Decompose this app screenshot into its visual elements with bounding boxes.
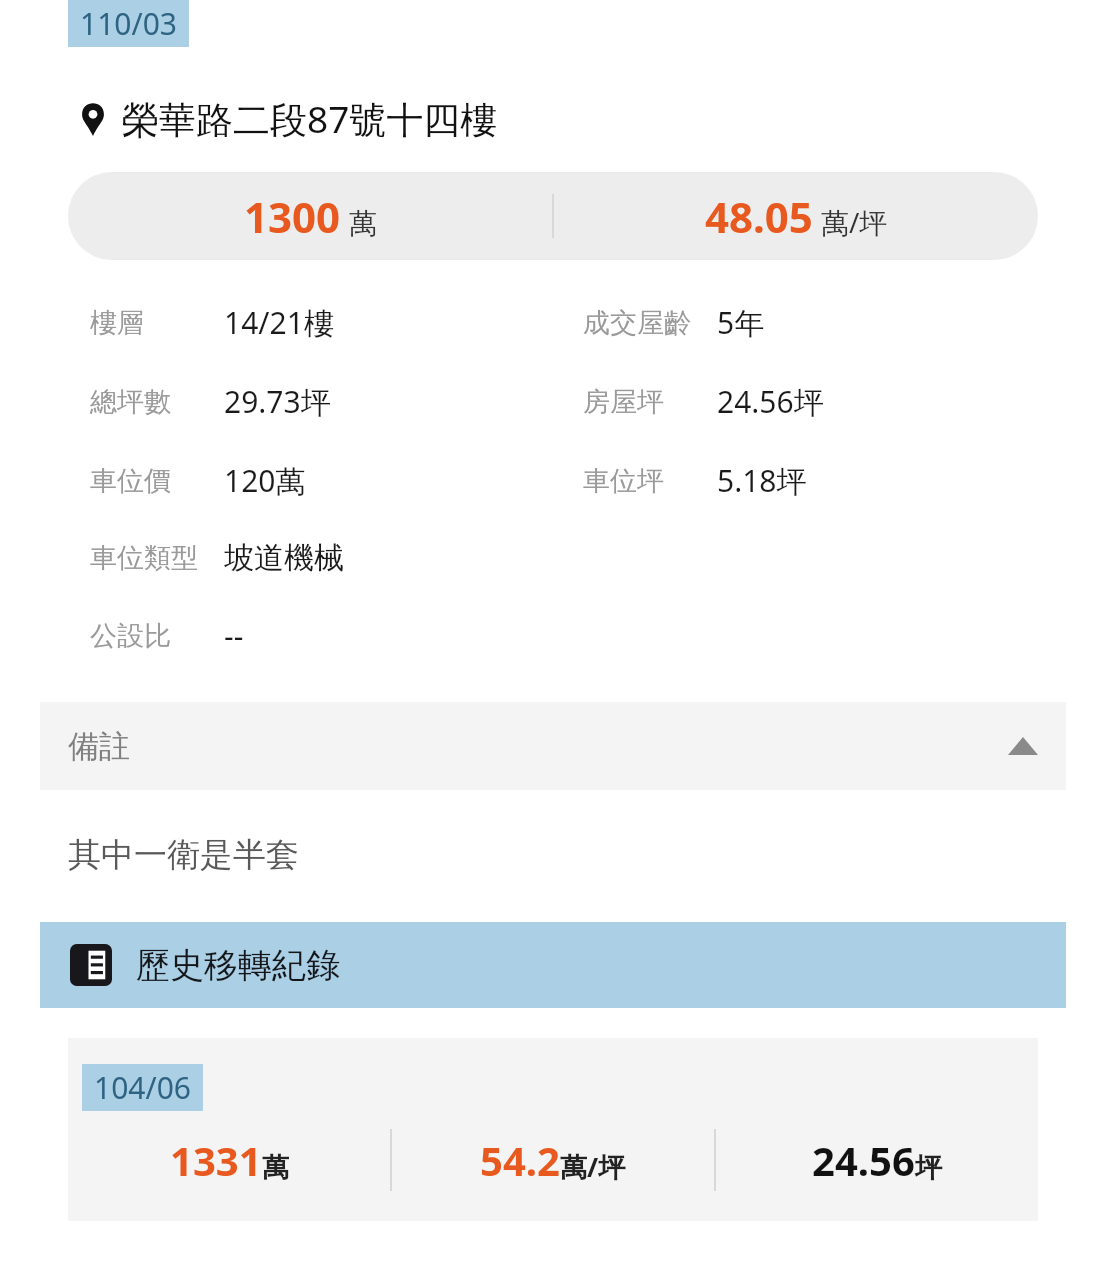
staticText: 樓層	[90, 306, 208, 340]
staticText: 坪	[915, 1151, 942, 1185]
other: Collapse remarks	[1008, 737, 1038, 755]
staticText: 公設比	[90, 619, 208, 653]
button[interactable]: 榮華路二段87號十四樓	[0, 93, 1106, 144]
staticText: 榮華路二段87號十四樓	[122, 93, 498, 144]
staticText: 車位價	[90, 464, 208, 498]
staticText: 48.05	[705, 188, 813, 245]
staticText: 29.73坪	[224, 381, 331, 422]
staticText: 110/03	[80, 3, 177, 44]
staticText: 5.18坪	[717, 460, 807, 501]
staticText: 54.2	[480, 1133, 560, 1187]
staticText: 1331	[170, 1133, 262, 1187]
staticText: 萬/坪	[560, 1148, 626, 1185]
staticText: 歷史移轉紀錄	[136, 944, 340, 987]
staticText: 1300	[244, 188, 341, 245]
staticText: 14/21樓	[224, 302, 334, 343]
staticText: 萬	[262, 1151, 289, 1185]
staticText: 備註	[68, 727, 130, 766]
staticText: 104/06	[94, 1067, 191, 1108]
staticText: 其中一衛是半套	[68, 834, 299, 876]
staticText: 24.56坪	[717, 381, 824, 422]
staticText: 車位類型	[90, 541, 208, 575]
staticText: 總坪數	[90, 385, 208, 419]
button[interactable]: 歷史移轉紀錄	[40, 922, 1066, 1008]
staticText: 成交屋齡	[583, 306, 701, 340]
staticText: 萬/坪	[821, 203, 888, 241]
staticText: 坡道機械	[224, 539, 344, 577]
button[interactable]: 104/06	[68, 1038, 1038, 1221]
staticText: 5年	[717, 302, 765, 343]
button[interactable]: 1300	[68, 172, 1038, 260]
button[interactable]: 備註	[40, 702, 1066, 790]
staticText: 120萬	[224, 460, 306, 501]
staticText: 24.56	[812, 1133, 915, 1187]
staticText: 萬	[349, 206, 377, 241]
staticText: 房屋坪	[583, 385, 701, 419]
staticText: 車位坪	[583, 464, 701, 498]
staticText: --	[224, 615, 244, 656]
